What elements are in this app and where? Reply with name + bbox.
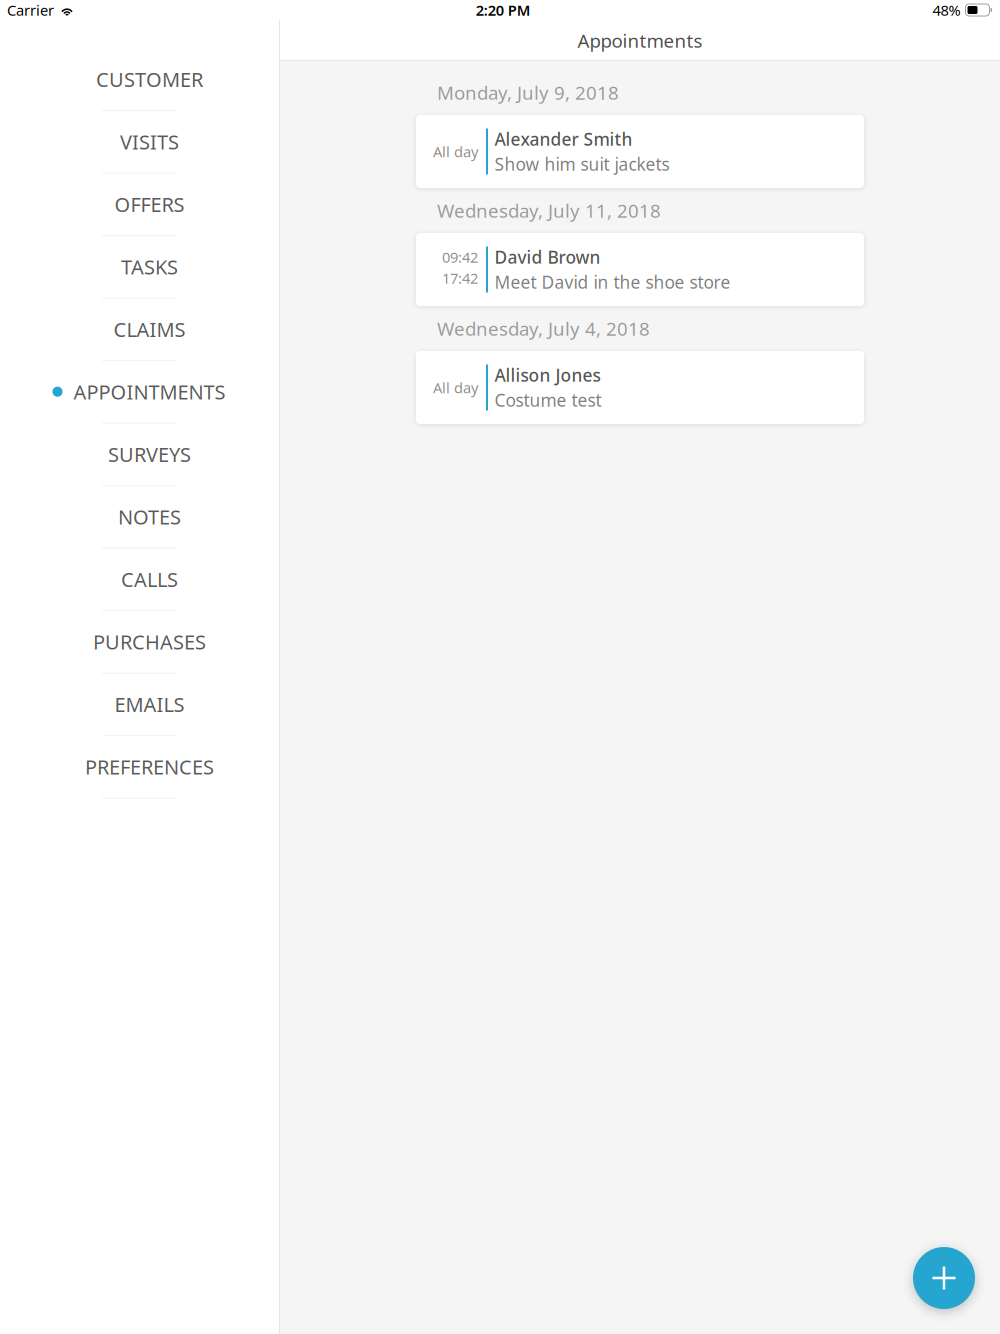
staticText: Wednesday, July 11, 2018 [437,198,661,223]
staticText: CUSTOMER [96,66,203,92]
staticText: All day [433,142,478,161]
staticText: Monday, July 9, 2018 [437,80,619,105]
staticText: Wednesday, July 4, 2018 [437,316,650,341]
button[interactable]: All day [416,115,864,188]
staticText: 09:42 [442,247,478,267]
staticText: EMAILS [114,691,184,717]
staticText: CALLS [121,566,178,592]
button[interactable]: 09:42 [416,233,864,306]
staticText: Show him suit jackets [494,152,669,175]
staticText: 48% [932,0,960,20]
staticText: Appointments [577,28,702,53]
button[interactable]: PURCHASES [0,625,279,687]
button[interactable]: CUSTOMER [0,62,279,125]
button[interactable]: PREFERENCES [0,750,279,812]
button[interactable]: Add appointment [913,1247,975,1309]
staticText: Alexander Smith [494,127,632,150]
button[interactable]: APPOINTMENTS [0,375,279,437]
staticText: Meet David in the shoe store [494,270,730,293]
staticText: TASKS [121,253,178,280]
staticText: NOTES [118,503,181,530]
staticText: PREFERENCES [85,753,214,780]
staticText: 17:42 [442,268,478,288]
staticText: Carrier [7,0,54,20]
button[interactable]: TASKS [0,250,279,312]
staticText: VISITS [120,128,179,155]
button[interactable]: CLAIMS [0,312,279,375]
button[interactable]: VISITS [0,125,279,187]
staticText: 2:20 PM [476,0,531,20]
staticText: OFFERS [114,191,184,217]
staticText: APPOINTMENTS [73,378,225,405]
staticText: PURCHASES [93,628,206,655]
button[interactable]: OFFERS [0,187,279,250]
staticText: CLAIMS [113,316,185,342]
button[interactable]: EMAILS [0,687,279,750]
staticText: David Brown [494,245,600,268]
staticText: All day [433,378,478,397]
staticText: Allison Jones [494,363,600,386]
staticText: SURVEYS [108,441,191,467]
button[interactable]: All day [416,351,864,424]
button[interactable]: SURVEYS [0,437,279,500]
staticText: Costume test [494,388,601,411]
button[interactable]: CALLS [0,562,279,625]
button[interactable]: NOTES [0,500,279,562]
